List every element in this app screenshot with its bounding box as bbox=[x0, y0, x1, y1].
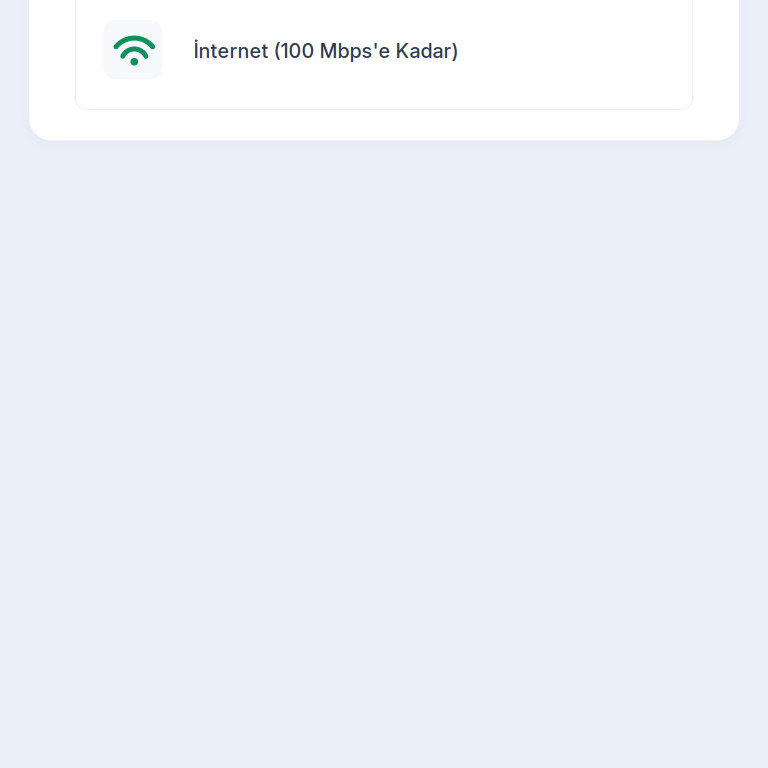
staticText: İnternet (100 Mbps'e Kadar) bbox=[193, 39, 458, 63]
button[interactable]: İnternet (100 Mbps'e Kadar) bbox=[75, 0, 692, 109]
